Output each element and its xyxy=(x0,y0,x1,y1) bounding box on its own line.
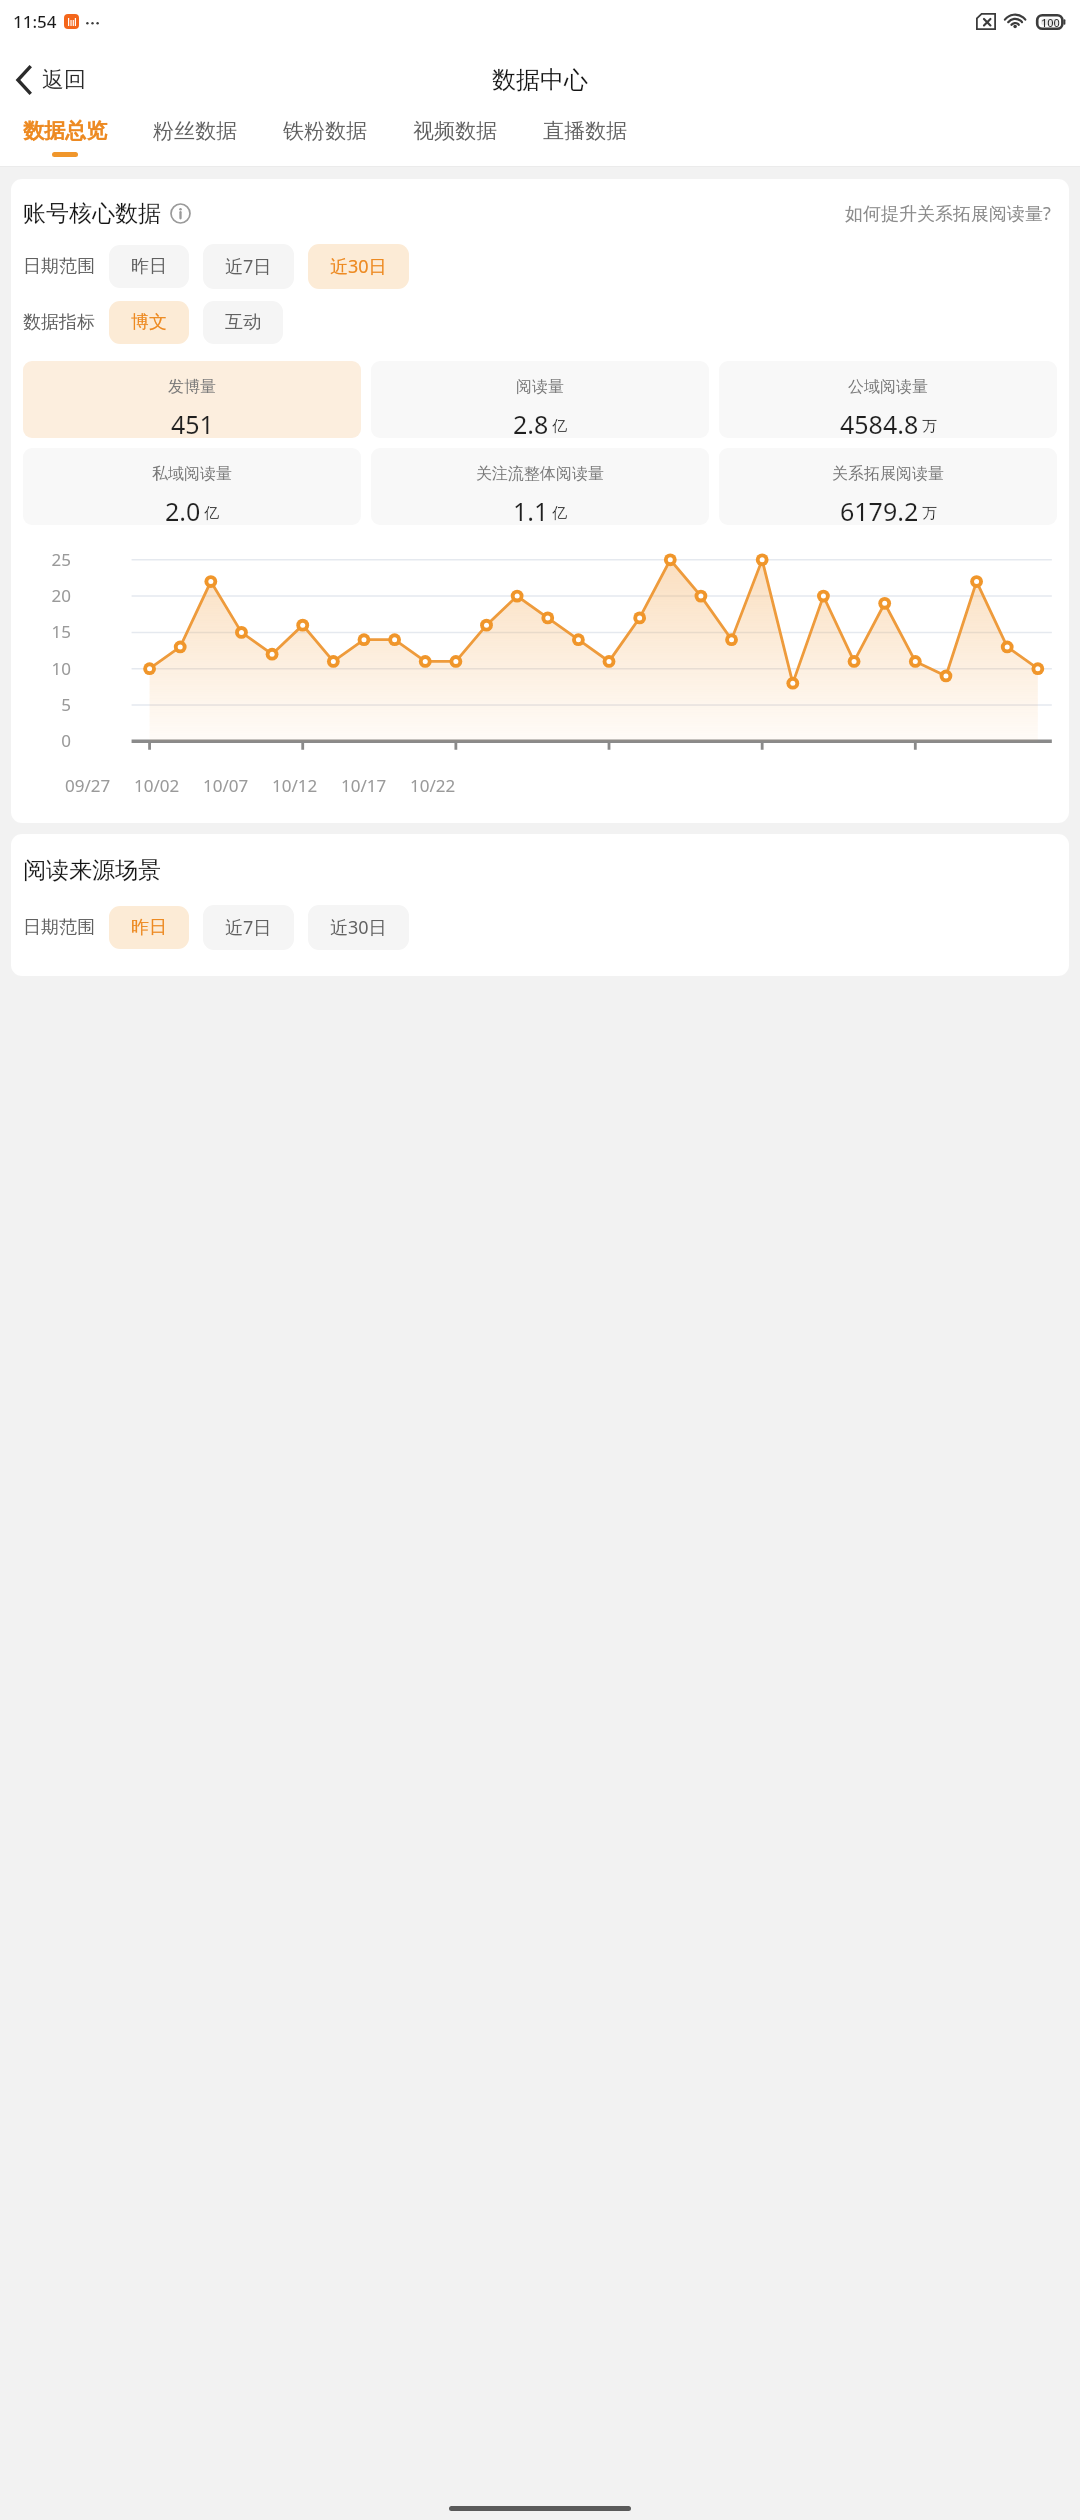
staticText: 阅读量 xyxy=(516,377,564,397)
staticText: 2.8 xyxy=(513,407,549,438)
staticText: 万 xyxy=(922,504,937,523)
staticText: 亿 xyxy=(552,504,567,523)
button[interactable]: 私域阅读量 xyxy=(23,448,361,525)
staticText: 5 xyxy=(23,693,71,716)
staticText: 关注流整体阅读量 xyxy=(476,464,604,484)
staticText: 阅读来源场景 xyxy=(23,856,161,885)
staticText: 0 xyxy=(23,729,71,752)
button[interactable]: 公域阅读量 xyxy=(719,361,1057,438)
button[interactable]: 直播数据 xyxy=(520,116,650,159)
button[interactable]: 近30日 xyxy=(308,244,409,289)
staticText: 2.0 xyxy=(165,494,201,525)
button[interactable]: 发博量 xyxy=(23,361,361,438)
staticText: 20 xyxy=(23,584,71,607)
staticText: 昨日 xyxy=(131,916,167,939)
staticText: 私域阅读量 xyxy=(152,464,232,484)
button[interactable]: 博文 xyxy=(109,301,189,344)
button[interactable]: 互动 xyxy=(203,301,283,344)
staticText: 万 xyxy=(922,417,937,436)
staticText: 10/07 xyxy=(203,774,249,797)
staticText: 近30日 xyxy=(330,915,387,940)
staticText: 数据指标 xyxy=(23,311,95,334)
staticText: 公域阅读量 xyxy=(848,377,928,397)
staticText: 6179.2 xyxy=(840,494,919,525)
staticText: 直播数据 xyxy=(543,118,627,144)
staticText: 账号核心数据 xyxy=(23,199,161,228)
staticText: 日期范围 xyxy=(23,255,95,278)
button[interactable]: 关注流整体阅读量 xyxy=(371,448,709,525)
button[interactable]: 昨日 xyxy=(109,245,189,288)
staticText: 数据中心 xyxy=(492,65,588,95)
staticText: 10 xyxy=(23,657,71,680)
staticText: 亿 xyxy=(552,417,567,436)
button[interactable]: 近7日 xyxy=(203,244,294,289)
staticText: 09/27 xyxy=(65,774,111,797)
staticText: 返回 xyxy=(42,66,86,94)
staticText: 近7日 xyxy=(225,915,272,940)
button[interactable]: 近30日 xyxy=(308,905,409,950)
staticText: 发博量 xyxy=(168,377,216,397)
button[interactable]: 说明 xyxy=(169,202,192,225)
staticText: 15 xyxy=(23,620,71,643)
staticText: 亿 xyxy=(204,504,219,523)
button[interactable]: 近7日 xyxy=(203,905,294,950)
staticText: 25 xyxy=(23,548,71,571)
staticText: 博文 xyxy=(131,311,167,334)
staticText: 1.1 xyxy=(513,494,549,525)
button[interactable]: 铁粉数据 xyxy=(260,116,390,159)
staticText: 近30日 xyxy=(330,254,387,279)
staticText: 粉丝数据 xyxy=(153,118,237,144)
button[interactable]: 如何提升关系拓展阅读量? xyxy=(845,201,1057,226)
button[interactable]: 返回 xyxy=(0,43,102,116)
staticText: 11:54 xyxy=(13,10,57,33)
button[interactable]: 昨日 xyxy=(109,906,189,949)
staticText: 昨日 xyxy=(131,255,167,278)
staticText: 4584.8 xyxy=(840,407,919,438)
staticText: 10/12 xyxy=(272,774,318,797)
staticText: 铁粉数据 xyxy=(283,118,367,144)
staticText: 100 xyxy=(1041,15,1060,30)
button[interactable]: 视频数据 xyxy=(390,116,520,159)
staticText: 互动 xyxy=(225,311,261,334)
staticText: 关系拓展阅读量 xyxy=(832,464,944,484)
button[interactable]: 关系拓展阅读量 xyxy=(719,448,1057,525)
button[interactable]: 粉丝数据 xyxy=(130,116,260,159)
staticText: 日期范围 xyxy=(23,916,95,939)
button[interactable]: 数据总览 xyxy=(0,116,130,159)
staticText: 10/17 xyxy=(341,774,387,797)
staticText: 视频数据 xyxy=(413,118,497,144)
staticText: 10/02 xyxy=(134,774,180,797)
staticText: 数据总览 xyxy=(23,118,107,144)
staticText: 451 xyxy=(171,407,214,438)
button[interactable]: 阅读量 xyxy=(371,361,709,438)
staticText: 10/22 xyxy=(410,774,456,797)
staticText: 近7日 xyxy=(225,254,272,279)
